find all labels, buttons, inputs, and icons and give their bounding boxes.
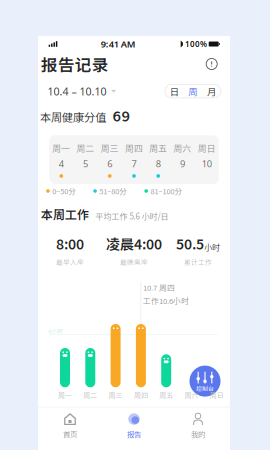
button[interactable]: 首页 [38, 409, 102, 443]
staticText: 周 [188, 84, 197, 98]
staticText: 8:00 [56, 233, 84, 254]
staticText: 累计工作 [184, 257, 212, 267]
button[interactable]: 10.4 – 10.10 [47, 84, 116, 98]
staticText: 凌晨4:00 [106, 233, 162, 254]
button[interactable]: 月 [202, 84, 221, 98]
staticText: 周六 [184, 390, 198, 400]
button[interactable]: 我的 [166, 409, 230, 443]
staticText: 周五 [149, 142, 167, 154]
staticText: 周日 [198, 142, 216, 154]
staticText: 81–100分 [150, 186, 181, 196]
staticText: 50.5 [176, 233, 204, 254]
staticText: 69 [112, 104, 130, 126]
staticText: 9 [180, 157, 185, 170]
staticText: 10.4 – 10.10 [47, 84, 106, 98]
staticText: 周一 [52, 142, 70, 154]
staticText: 周四 [125, 142, 143, 154]
button[interactable]: 周 [183, 84, 202, 98]
staticText: 周二 [76, 142, 94, 154]
button[interactable]: 控制台 [189, 366, 220, 397]
staticText: 周日 [210, 390, 224, 400]
button[interactable]: 报告 [102, 409, 166, 443]
staticText: 周三 [109, 390, 123, 400]
staticText: 小时 [204, 241, 220, 253]
staticText: 51–80分 [99, 186, 126, 196]
staticText: 月 [207, 84, 216, 98]
staticText: 周六 [173, 142, 191, 154]
staticText: 我的 [191, 429, 205, 439]
staticText: 8小时 [48, 327, 63, 335]
staticText: 9:41 AM [101, 38, 136, 50]
staticText: 本周工作 [41, 205, 89, 223]
staticText: 日 [170, 84, 179, 98]
staticText: 100% [185, 39, 207, 49]
button[interactable]: 说明 [205, 57, 218, 70]
staticText: 控制台 [196, 384, 214, 393]
staticText: 最早入座 [56, 257, 84, 267]
staticText: 周一 [58, 390, 72, 400]
staticText: 首页 [63, 429, 77, 439]
staticText: 报告记录 [41, 52, 109, 76]
staticText: 8 [156, 157, 161, 170]
staticText: 4 [59, 157, 64, 170]
staticText: 0–50分 [52, 186, 75, 196]
staticText: 工作10.6小时 [143, 295, 189, 306]
button[interactable]: 日 [165, 84, 183, 98]
staticText: 6 [107, 157, 112, 170]
staticText: 周五 [159, 390, 173, 400]
staticText: 报告 [127, 429, 141, 439]
staticText: 10.7 周四 [143, 282, 175, 293]
staticText: 7 [131, 157, 136, 170]
staticText: 周二 [83, 390, 97, 400]
staticText: 10 [202, 157, 212, 170]
staticText: 最晚离座 [120, 257, 148, 267]
staticText: 5 [83, 157, 88, 170]
staticText: 平均工作 5.6 小时/日 [95, 210, 168, 222]
staticText: 周四 [134, 390, 148, 400]
staticText: 周三 [101, 142, 119, 154]
staticText: 本周健康分值 [40, 108, 106, 125]
